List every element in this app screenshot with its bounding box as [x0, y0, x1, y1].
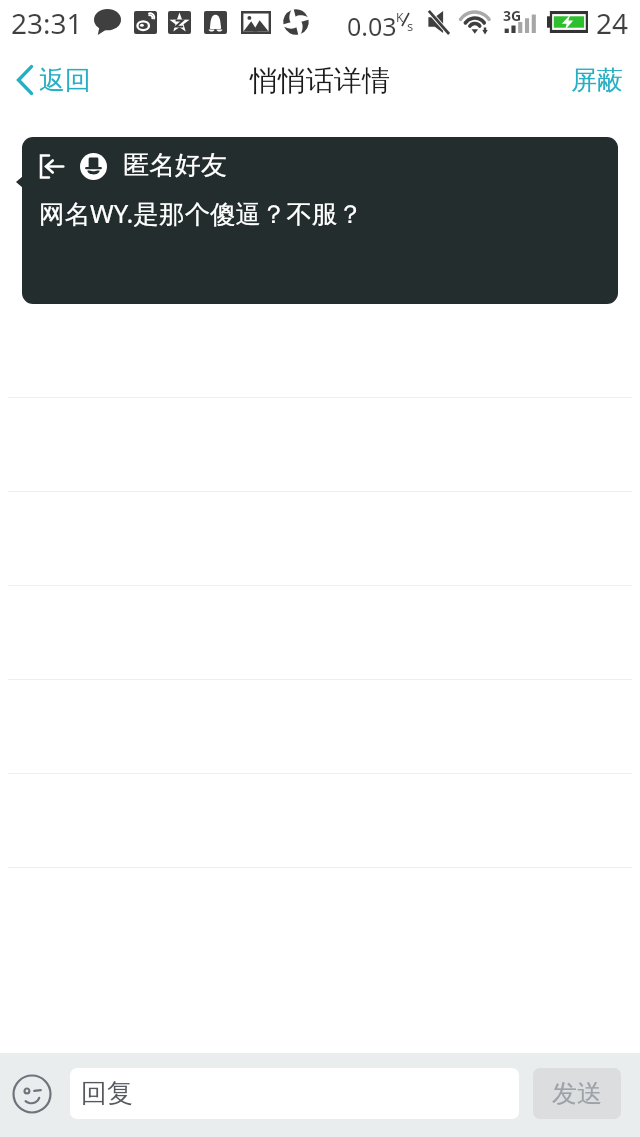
staticText: s — [407, 17, 414, 35]
button[interactable]: 回复 — [70, 1068, 519, 1119]
button[interactable]: 返回 — [8, 51, 149, 109]
staticText: 0.03 — [347, 9, 397, 43]
staticText: 回复 — [81, 1077, 133, 1110]
button[interactable]: 发送 — [533, 1068, 621, 1119]
staticText: K — [396, 9, 404, 25]
button[interactable]: 屏蔽 — [553, 51, 640, 109]
staticText: 匿名好友 — [123, 149, 227, 182]
staticText: 23:31 — [11, 4, 83, 42]
staticText: 24 — [596, 4, 629, 42]
staticText: 返回 — [39, 64, 91, 97]
button[interactable]: Emoji — [10, 1072, 54, 1116]
staticText: 悄悄话详情 — [250, 63, 390, 98]
staticText: 屏蔽 — [571, 64, 623, 97]
button[interactable]: 匿名好友 — [22, 137, 618, 304]
staticText: 3G — [503, 6, 522, 25]
staticText: 发送 — [552, 1078, 602, 1109]
staticText: 网名WY.是那个傻逼？不服？ — [39, 196, 363, 231]
